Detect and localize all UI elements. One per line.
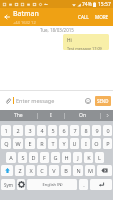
- button[interactable]: W: [13, 138, 23, 149]
- staticText: Batman: [13, 9, 39, 19]
- staticText: H: [64, 154, 69, 161]
- staticText: +44 1632 12: [13, 20, 36, 25]
- staticText: X: [29, 167, 33, 174]
- staticText: 74%: [82, 1, 92, 8]
- button[interactable]: 8: [81, 125, 90, 136]
- button[interactable]: 5: [48, 125, 57, 136]
- button[interactable]: Attach file: [2, 95, 13, 106]
- button[interactable]: SEND: [95, 96, 111, 106]
- button[interactable]: .: [79, 179, 88, 190]
- staticText: M: [88, 167, 93, 174]
- staticText: CALL: [78, 14, 89, 20]
- button[interactable]: A: [6, 152, 16, 163]
- button[interactable]: CALL: [75, 8, 92, 26]
- button[interactable]: Z: [15, 165, 24, 176]
- button[interactable]: Hi: [63, 34, 109, 50]
- staticText: 3: [28, 127, 32, 134]
- staticText: I: [85, 140, 87, 147]
- button[interactable]: Q: [1, 138, 11, 149]
- staticText: K: [87, 154, 91, 161]
- staticText: Sym: [4, 182, 13, 188]
- button[interactable]: 3: [25, 125, 35, 136]
- staticText: On: [79, 112, 86, 119]
- button[interactable]: More suggestions: [101, 110, 113, 121]
- staticText: 9: [95, 127, 99, 134]
- staticText: G: [53, 154, 58, 161]
- button[interactable]: 6: [59, 125, 68, 136]
- button[interactable]: O: [92, 138, 101, 149]
- staticText: 2: [16, 127, 20, 134]
- button[interactable]: B: [61, 165, 71, 176]
- button[interactable]: N: [73, 165, 83, 176]
- button[interactable]: S: [18, 152, 27, 163]
- button[interactable]: Shift: [1, 165, 13, 176]
- button[interactable]: L: [95, 152, 104, 163]
- button[interactable]: 4: [37, 125, 46, 136]
- staticText: 5: [51, 127, 55, 134]
- button[interactable]: E: [25, 138, 35, 149]
- staticText: O: [94, 140, 99, 147]
- button[interactable]: Sym: [1, 179, 15, 190]
- button[interactable]: Emoji: [82, 95, 93, 106]
- button[interactable]: English (N): [27, 179, 77, 190]
- staticText: Enter message: [16, 97, 82, 104]
- button[interactable]: Backspace: [97, 165, 112, 176]
- button[interactable]: J: [73, 152, 82, 163]
- staticText: 8: [84, 127, 88, 134]
- staticText: V: [52, 167, 56, 174]
- button[interactable]: 9: [92, 125, 101, 136]
- staticText: .: [83, 181, 85, 188]
- button[interactable]: The: [0, 110, 37, 121]
- button[interactable]: G: [51, 152, 60, 163]
- staticText: W: [15, 140, 21, 147]
- button[interactable]: 2: [13, 125, 23, 136]
- button[interactable]: 7: [70, 125, 79, 136]
- button[interactable]: D: [29, 152, 38, 163]
- staticText: Hi: [67, 37, 72, 44]
- staticText: Test message 17:09: [67, 46, 102, 50]
- button[interactable]: F: [40, 152, 49, 163]
- button[interactable]: Back: [0, 8, 13, 26]
- staticText: B: [64, 167, 68, 174]
- button[interactable]: H: [62, 152, 71, 163]
- staticText: T: [51, 140, 55, 147]
- button[interactable]: On: [65, 110, 100, 121]
- staticText: Tue, 18/03/2015: [40, 27, 74, 33]
- button[interactable]: K: [84, 152, 93, 163]
- button[interactable]: X: [26, 165, 35, 176]
- staticText: The: [14, 112, 23, 119]
- staticText: C: [40, 167, 44, 174]
- button[interactable]: I: [38, 110, 64, 121]
- staticText: E: [28, 140, 32, 147]
- button[interactable]: I: [81, 138, 90, 149]
- button[interactable]: P: [103, 138, 112, 149]
- button[interactable]: M: [85, 165, 95, 176]
- staticText: N: [76, 167, 81, 174]
- button[interactable]: MORE: [92, 8, 113, 26]
- button[interactable]: 0: [103, 125, 112, 136]
- staticText: L: [98, 154, 101, 161]
- staticText: Z: [18, 167, 22, 174]
- button[interactable]: T: [48, 138, 57, 149]
- button[interactable]: Y: [59, 138, 68, 149]
- staticText: S: [21, 154, 25, 161]
- staticText: J: [77, 154, 79, 161]
- staticText: U: [72, 140, 77, 147]
- staticText: English (N): [42, 182, 63, 187]
- staticText: P: [106, 140, 110, 147]
- button[interactable]: R: [37, 138, 46, 149]
- staticText: MORE: [95, 14, 109, 20]
- button[interactable]: V: [49, 165, 59, 176]
- staticText: A: [9, 154, 13, 161]
- staticText: 6: [62, 127, 66, 134]
- staticText: F: [43, 154, 46, 161]
- button[interactable]: Enter: [90, 179, 112, 190]
- staticText: 0: [106, 127, 110, 134]
- staticText: R: [40, 140, 44, 147]
- button[interactable]: C: [37, 165, 47, 176]
- button[interactable]: U: [70, 138, 79, 149]
- staticText: I: [50, 112, 52, 119]
- staticText: 1: [4, 127, 8, 134]
- button[interactable]: 1: [1, 125, 11, 136]
- button[interactable]: Keyboard settings: [17, 179, 25, 190]
